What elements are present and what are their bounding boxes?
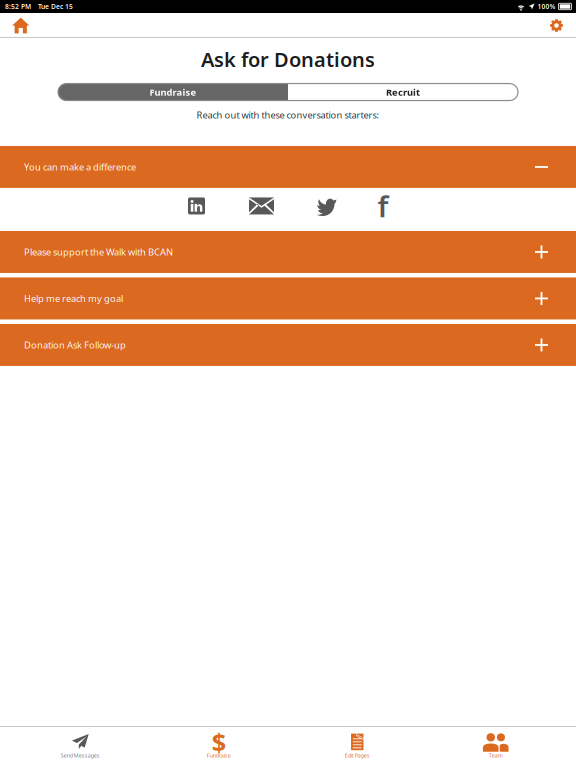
staticText: Recruit [386,86,420,98]
staticText: $ [212,725,226,759]
staticText: You can make a difference [24,161,136,173]
button[interactable]: Share on Twitter [294,188,359,224]
button[interactable]: Share by email [229,187,294,225]
staticText: Tue Dec 15 [38,2,73,11]
staticText: Help me reach my goal [24,292,123,305]
button[interactable]: Help me reach my goal [0,277,576,319]
button[interactable]: Recruit [288,84,518,101]
staticText: Edit Pages [345,752,370,759]
button[interactable]: Donation Ask Follow-up [0,324,576,366]
button[interactable]: Home [5,13,38,38]
staticText: 8:52 PM [5,2,31,11]
button[interactable]: Please support the Walk with BCAN [0,231,576,273]
button[interactable]: You can make a difference [0,146,576,188]
staticText: Donation Ask Follow-up [24,339,126,351]
staticText: Please support the Walk with BCAN [24,246,173,258]
staticText: Fundraise [149,86,196,98]
staticText: Ask for Donations [201,46,375,73]
staticText: f [377,186,388,225]
button[interactable]: Settings [542,13,571,38]
button[interactable]: $ [149,726,288,768]
button[interactable]: Share on Facebook [359,187,407,225]
button[interactable]: Send Messages [11,726,149,768]
button[interactable]: Team [426,726,565,768]
staticText: Fundraise [207,752,231,759]
button[interactable]: Share on LinkedIn [164,187,229,225]
button[interactable]: Fundraise [58,84,288,101]
staticText: Team [489,752,503,759]
staticText: Send Messages [61,752,100,759]
button[interactable]: Edit Pages [288,726,426,768]
staticText: 100% [537,2,555,11]
staticText: Reach out with these conversation starte… [196,109,379,121]
